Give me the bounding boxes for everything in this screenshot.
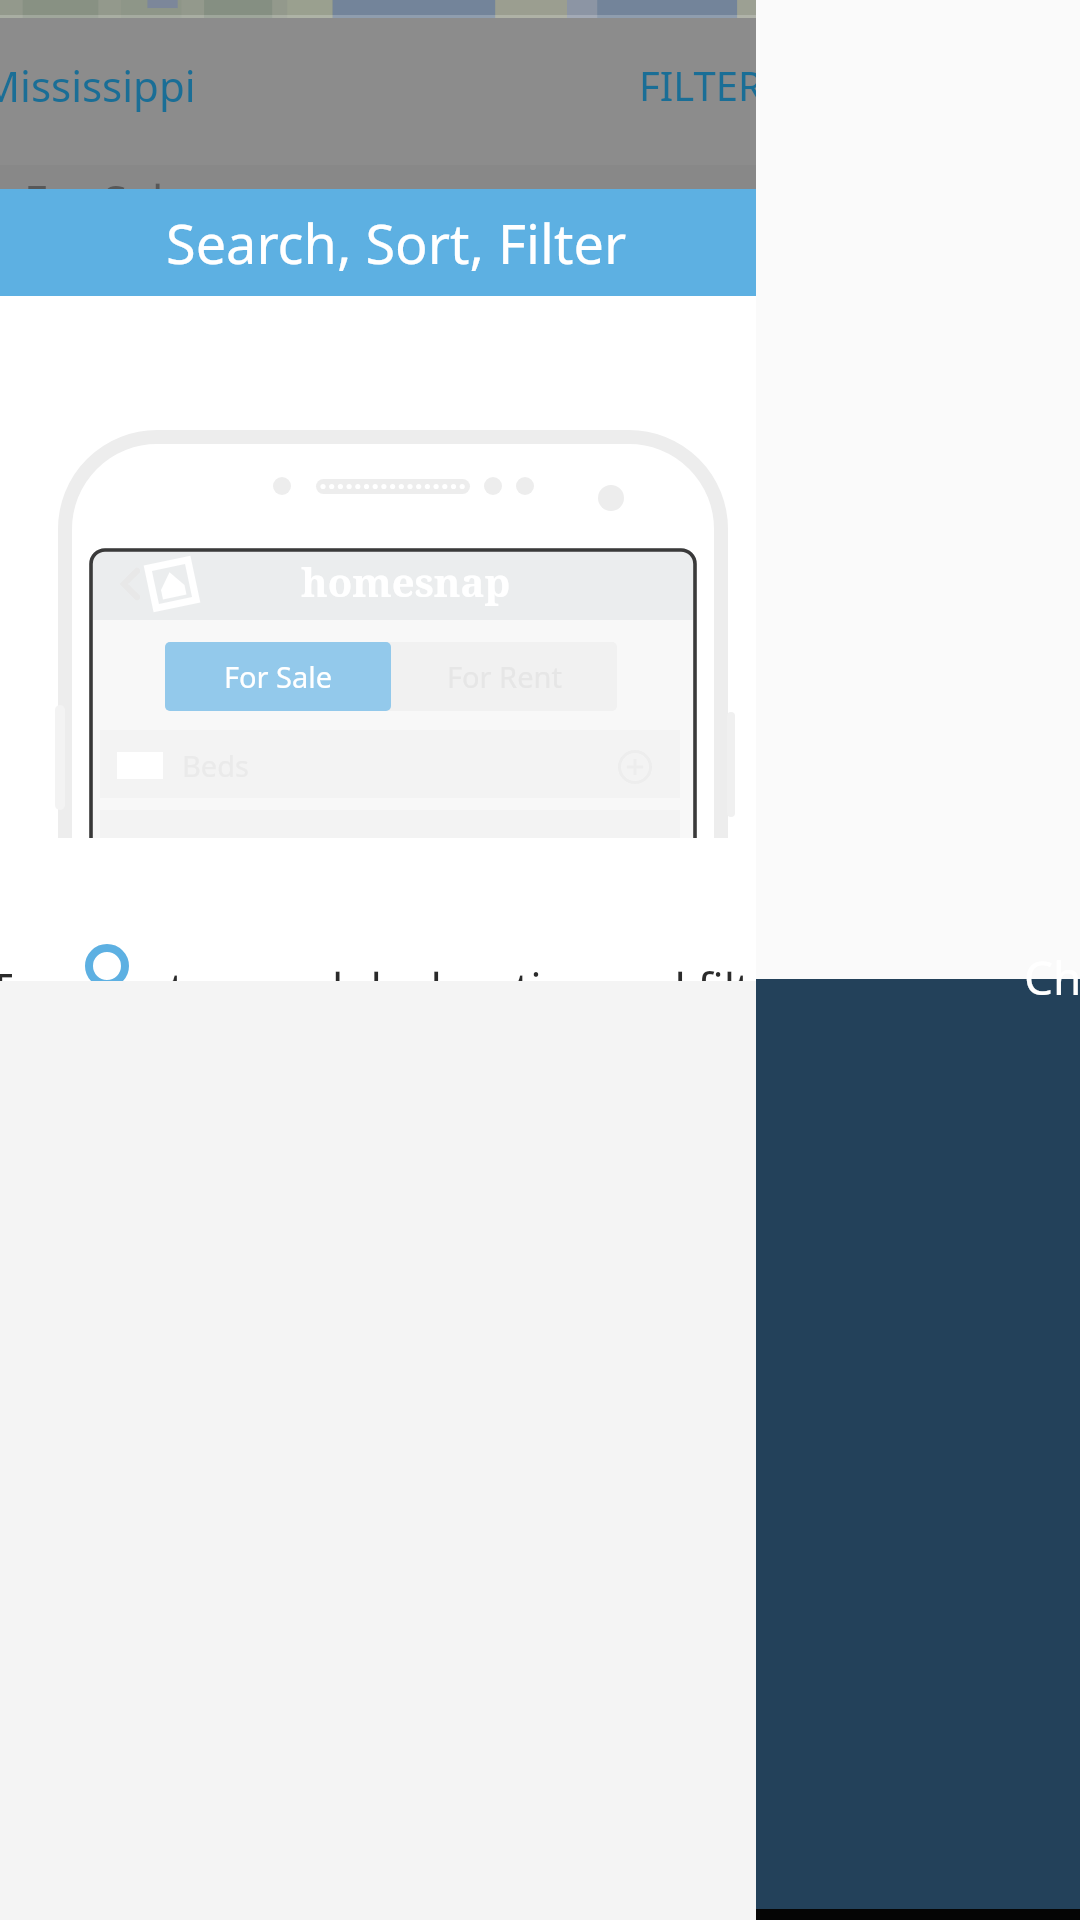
staticText: homesnap — [301, 554, 511, 608]
staticText: Beds — [182, 746, 249, 785]
button[interactable]: FILTER — [620, 42, 756, 126]
other: Back — [108, 562, 152, 606]
button[interactable]: For Sale — [165, 642, 391, 711]
staticText: For Rent — [447, 657, 562, 696]
staticText: to search by location and filt — [169, 958, 751, 1018]
button[interactable]: Mississippi — [0, 42, 560, 126]
staticText: FILTER — [639, 58, 763, 112]
staticText: Cha — [1024, 946, 1080, 1009]
staticText: Search, Sort, Filter — [166, 206, 627, 280]
staticText: For Sale — [224, 657, 333, 696]
button[interactable]: Search, Sort, Filter — [0, 189, 756, 296]
staticText: Tap — [0, 958, 61, 1018]
staticText: For Sale — [24, 170, 189, 189]
staticText: Mississippi — [0, 57, 196, 114]
